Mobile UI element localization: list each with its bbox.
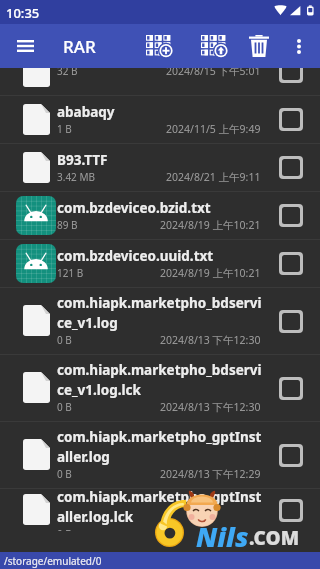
button[interactable]: Select: [273, 370, 309, 406]
button[interactable]: com.bzdeviceo.uuid.txt: [0, 239, 320, 287]
button[interactable]: Select: [273, 492, 309, 528]
button[interactable]: B93.TTF: [0, 143, 320, 191]
staticText: com.hiapk.marketpho_bdservi ce_v1.log.lc…: [57, 361, 261, 399]
button[interactable]: com.hiapk.marketpho_bdservi ce_v1.log.lc…: [0, 354, 320, 421]
button[interactable]: Select: [273, 437, 309, 473]
staticText: 0 B: [57, 333, 72, 347]
button[interactable]: Add to archive: [142, 24, 176, 68]
staticText: /storage/emulated/0: [4, 554, 102, 568]
staticText: Nils: [196, 518, 249, 555]
staticText: 89 B: [57, 218, 78, 232]
staticText: 2024/8/19 上午10:21: [160, 218, 261, 232]
staticText: 2024/8/21 上午9:11: [166, 170, 261, 184]
staticText: com.bzdeviceo.uuid.txt: [57, 247, 214, 265]
button[interactable]: Select: [273, 245, 309, 281]
staticText: 0 B: [57, 467, 72, 481]
button[interactable]: Select: [273, 303, 309, 339]
staticText: 3.42 MB: [57, 170, 96, 184]
staticText: 2024/11/5 上午9:49: [166, 122, 261, 136]
staticText: 0 B: [57, 400, 72, 414]
button[interactable]: More options: [286, 24, 312, 68]
staticText: 0 B: [57, 527, 72, 531]
staticText: 32 B: [57, 68, 78, 78]
staticText: com.bzdeviceo.bzid.txt: [57, 199, 211, 217]
staticText: .COM: [249, 525, 300, 551]
button[interactable]: com.hiapk.marketpho_gptInst aller.log: [0, 421, 320, 488]
staticText: RAR: [63, 35, 96, 58]
button[interactable]: com.hiapk.marketpho_bdservi ce_v1.log: [0, 287, 320, 354]
button[interactable]: Select: [273, 68, 309, 89]
button[interactable]: Select: [273, 101, 309, 137]
staticText: com.hiapk.marketpho_gptInst aller.log.lc…: [57, 488, 261, 526]
button[interactable]: com.hiapk.marketpho_gptInst aller.log.lc…: [0, 488, 320, 531]
button[interactable]: com.bzdeviceo.bzid.txt: [0, 191, 320, 239]
staticText: com.hiapk.marketpho_bdservi ce_v1.log: [57, 294, 261, 332]
staticText: 2024/8/13 下午12:30: [160, 400, 261, 414]
staticText: 2024/8/13 下午12:29: [160, 467, 261, 481]
staticText: ababaqy: [57, 103, 115, 121]
button[interactable]: Select: [273, 197, 309, 233]
staticText: B93.TTF: [57, 151, 108, 169]
button[interactable]: Extract: [197, 24, 231, 68]
button[interactable]: Select: [273, 149, 309, 185]
button[interactable]: Delete: [243, 24, 275, 68]
staticText: com.hiapk.marketpho_gptInst aller.log: [57, 428, 261, 466]
staticText: 1 B: [57, 122, 72, 136]
staticText: 10:35: [6, 4, 40, 22]
staticText: 121 B: [57, 266, 84, 280]
button[interactable]: 32 B: [0, 68, 320, 95]
staticText: 2024/8/13 下午12:30: [160, 333, 261, 347]
staticText: 2024/8/19 上午10:21: [160, 266, 261, 280]
button[interactable]: ababaqy: [0, 95, 320, 143]
button[interactable]: Menu: [8, 24, 42, 68]
staticText: 2024/8/15 下午5:01: [166, 68, 261, 78]
